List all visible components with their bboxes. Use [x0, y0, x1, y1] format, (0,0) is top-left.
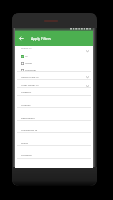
staticText: All — [25, 54, 28, 57]
button[interactable]: Expand — [83, 74, 91, 80]
staticText: Status — [21, 141, 29, 144]
staticText: Transferred To — [21, 128, 38, 131]
staticText: Category — [21, 90, 32, 93]
button[interactable]: Customer — [15, 67, 93, 73]
staticText: Department — [21, 116, 35, 119]
button[interactable]: Above — [15, 60, 93, 66]
staticText: Above — [25, 61, 32, 64]
button[interactable]: Expand — [83, 48, 91, 54]
button[interactable]: All — [15, 53, 93, 59]
button[interactable]: Expand — [83, 83, 91, 89]
staticText: Asset Center All — [21, 83, 39, 86]
staticText: Customer — [25, 68, 37, 71]
staticText: Condition — [21, 153, 32, 156]
staticText: Linked Acute All — [21, 75, 39, 78]
staticText: Apply Filters — [31, 36, 51, 41]
staticText: Status All — [21, 46, 32, 49]
staticText: Location — [21, 103, 31, 106]
button[interactable]: Back — [17, 31, 25, 46]
